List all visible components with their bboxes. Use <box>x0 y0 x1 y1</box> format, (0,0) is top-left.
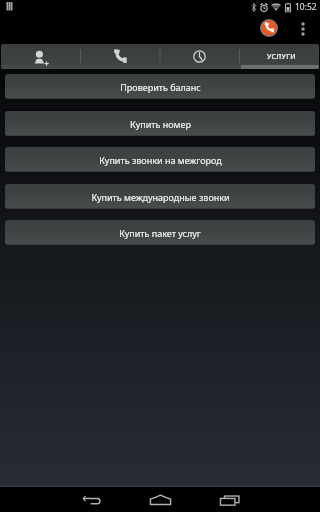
button[interactable]: Купить пакет услуг <box>5 220 315 245</box>
staticText: УСЛУГИ <box>267 52 297 62</box>
button[interactable]: Проверить баланс <box>5 74 315 99</box>
staticText: Купить международные звонки <box>91 191 230 203</box>
button[interactable]: Home <box>126 487 195 512</box>
button[interactable]: Call log <box>159 44 239 69</box>
button[interactable]: Купить звонки на межгород <box>5 147 315 172</box>
staticText: Купить номер <box>130 118 191 130</box>
button[interactable]: Call <box>260 19 278 37</box>
button[interactable]: УСЛУГИ <box>239 44 319 69</box>
button[interactable]: Recent apps <box>195 487 264 512</box>
button[interactable]: Add contact <box>1 44 80 69</box>
button[interactable]: Купить международные звонки <box>5 184 315 209</box>
staticText: 10:52 <box>295 1 317 13</box>
button[interactable]: Back <box>57 487 126 512</box>
button[interactable]: Купить номер <box>5 111 315 136</box>
button[interactable]: Dialpad <box>80 44 159 69</box>
staticText: Купить звонки на межгород <box>99 154 222 166</box>
button[interactable]: More options <box>292 14 314 44</box>
staticText: Проверить баланс <box>120 81 201 93</box>
staticText: Купить пакет услуг <box>119 227 201 239</box>
